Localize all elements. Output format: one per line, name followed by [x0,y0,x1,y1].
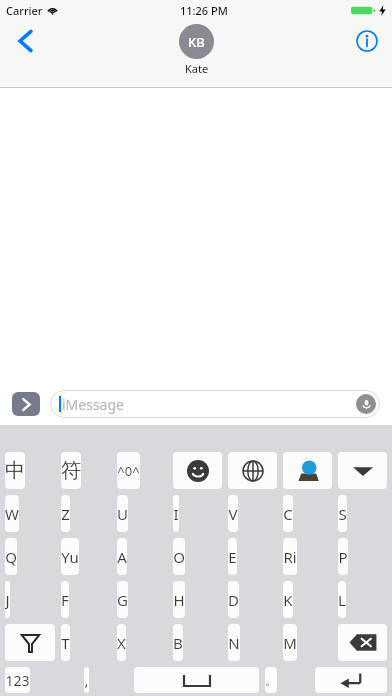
staticText: V [228,504,238,524]
button[interactable]: KB [179,24,214,76]
button[interactable]: Apps [12,392,40,416]
staticText: U [117,504,128,524]
staticText: 符 [61,458,81,483]
staticText: Carrier [6,3,43,18]
button[interactable]: Q [5,538,17,575]
staticText: , [84,670,89,690]
button[interactable]: C [283,495,293,532]
button[interactable]: G [117,581,128,618]
button[interactable]: E [228,538,237,575]
button[interactable]: B [173,624,183,661]
staticText: 123 [5,671,30,690]
staticText: Z [61,504,70,524]
button[interactable]: H [173,581,185,618]
button[interactable]: S [338,495,347,532]
button[interactable]: Ri [283,538,297,575]
button[interactable]: J [5,581,10,618]
staticText: E [228,547,237,567]
staticText: ^0^ [117,462,140,480]
staticText: I [173,504,179,524]
button[interactable]: F [61,581,69,618]
button[interactable]: Delete [338,624,387,661]
button[interactable]: Next keyboard [228,452,277,489]
button[interactable]: T [61,624,70,661]
button[interactable]: Hide keyboard [338,452,387,489]
button[interactable]: P [338,538,348,575]
button[interactable]: Sogou input [283,452,332,489]
button[interactable]: V [228,495,238,532]
staticText: Kate [185,61,209,76]
button[interactable]: 123 [5,667,30,693]
button[interactable]: L [338,581,346,618]
other: Dictate [356,394,376,414]
button[interactable]: 中 [5,452,25,489]
staticText: 。 [265,673,277,688]
button[interactable]: X [117,624,126,661]
button[interactable]: Emoji [173,452,222,489]
button[interactable]: N [228,624,240,661]
staticText: KB [188,33,205,51]
button[interactable]: Return [315,667,387,693]
staticText: T [61,633,70,653]
button[interactable]: I [173,495,179,532]
staticText: X [117,633,126,653]
button[interactable]: O [173,538,185,575]
staticText: 11:26 PM [180,3,228,18]
button[interactable]: 。 [265,667,277,693]
button[interactable]: 符 [61,452,81,489]
button[interactable]: U [117,495,128,532]
staticText: M [283,633,297,653]
button[interactable]: Details [350,24,384,58]
button[interactable]: Yu [61,538,79,575]
button[interactable]: M [283,624,297,661]
button[interactable]: D [228,581,239,618]
staticText: N [228,633,240,653]
staticText: H [173,590,185,610]
staticText: K [283,590,293,610]
button[interactable]: ^0^ [117,452,140,489]
button[interactable]: iMessage [50,390,380,418]
staticText: B [173,633,183,653]
staticText: P [338,547,348,567]
staticText: 中 [5,458,25,483]
button[interactable]: A [117,538,127,575]
staticText: D [228,590,239,610]
staticText: Ri [283,547,297,567]
staticText: F [61,590,69,610]
staticText: G [117,590,128,610]
button[interactable]: K [283,581,293,618]
staticText: W [5,504,19,524]
staticText: C [283,504,293,524]
staticText: Q [5,547,17,567]
button[interactable]: Space [134,667,259,693]
staticText: A [117,547,127,567]
button[interactable]: Z [61,495,70,532]
button[interactable]: , [84,667,89,693]
button[interactable]: Shift [5,624,55,661]
staticText: O [173,547,185,567]
staticText: L [338,590,346,610]
staticText: Yu [61,547,79,567]
button[interactable]: W [5,495,19,532]
staticText: J [5,590,10,610]
staticText: iMessage [62,395,124,414]
button[interactable]: Back [8,24,42,58]
staticText: S [338,504,347,524]
